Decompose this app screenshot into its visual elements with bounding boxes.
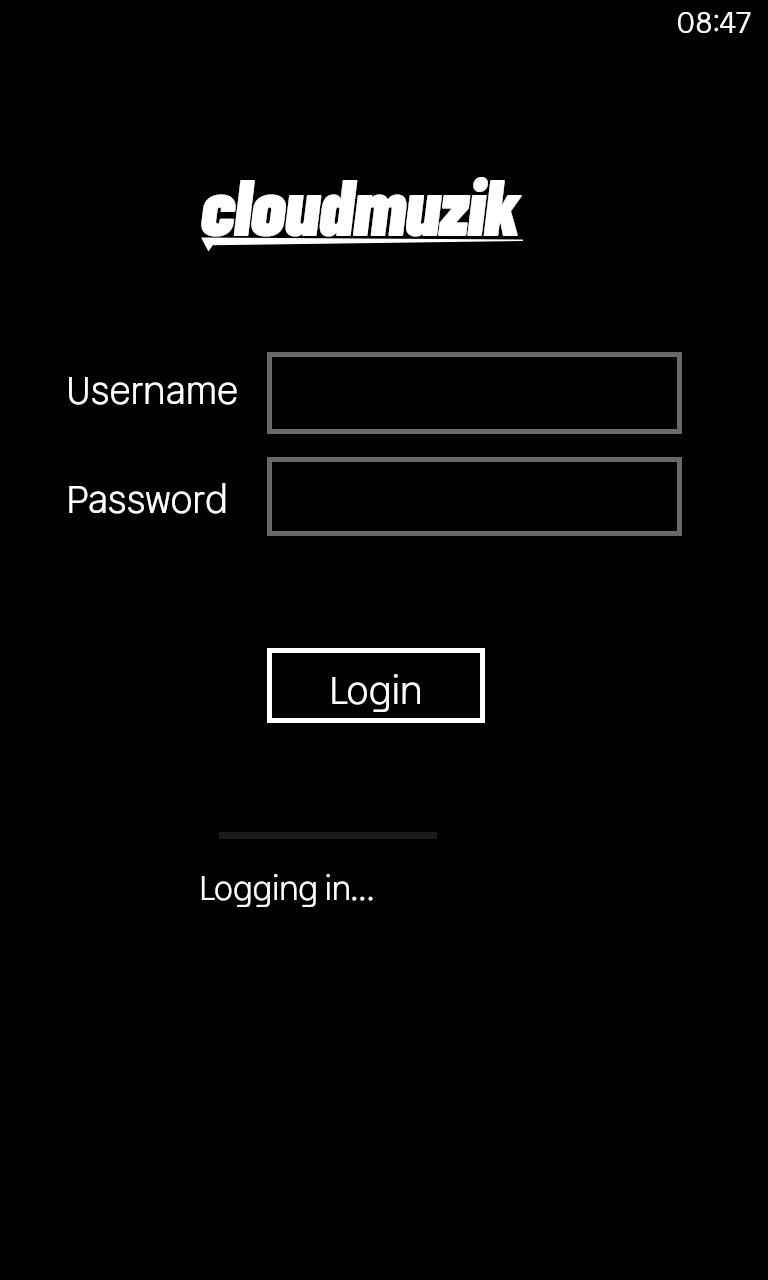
staticText: cloudmuzik: [200, 157, 520, 252]
staticText: Username: [66, 362, 239, 419]
button[interactable]: Login: [267, 648, 485, 723]
staticText: Logging in...: [199, 864, 376, 913]
button[interactable]: Username input field: [267, 352, 682, 434]
staticText: 08:47: [676, 0, 752, 44]
button[interactable]: Password input field: [267, 457, 682, 536]
staticText: Login: [329, 662, 423, 719]
staticText: Password: [66, 471, 228, 528]
